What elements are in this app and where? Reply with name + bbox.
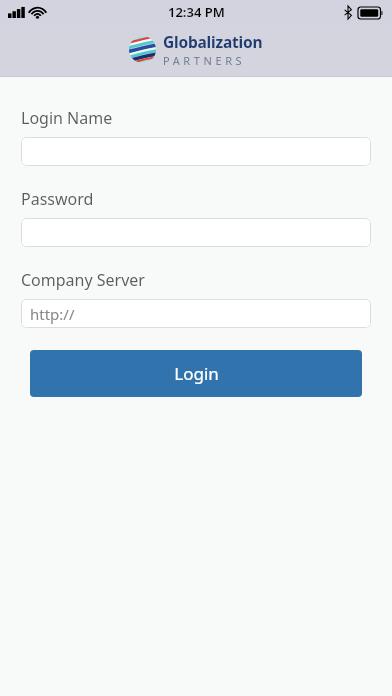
staticText: Login (174, 362, 219, 385)
staticText: http:// (30, 304, 75, 324)
staticText: Login Name (21, 107, 113, 129)
button[interactable] (21, 137, 371, 166)
button[interactable] (21, 218, 371, 247)
button[interactable]: http:// (21, 299, 371, 328)
staticText: Company Server (21, 269, 145, 291)
staticText: Password (21, 188, 94, 210)
staticText: Globalization (163, 31, 263, 52)
staticText: 12:34 PM (168, 3, 225, 21)
staticText: PARTNERS (163, 53, 246, 68)
button[interactable]: Login (30, 350, 362, 397)
